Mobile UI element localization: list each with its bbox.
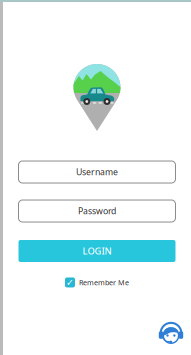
button[interactable]: Username xyxy=(18,161,175,183)
button[interactable]: Customer support chat xyxy=(158,320,184,346)
staticText: Password xyxy=(78,205,116,217)
button[interactable]: LOGIN xyxy=(18,240,175,262)
staticText: Remember Me xyxy=(79,277,129,287)
staticText: ✓ xyxy=(66,277,74,288)
button[interactable]: Password xyxy=(18,200,175,222)
button[interactable]: ✓ xyxy=(65,277,129,288)
staticText: Username xyxy=(76,166,118,178)
staticText: LOGIN xyxy=(82,245,111,257)
